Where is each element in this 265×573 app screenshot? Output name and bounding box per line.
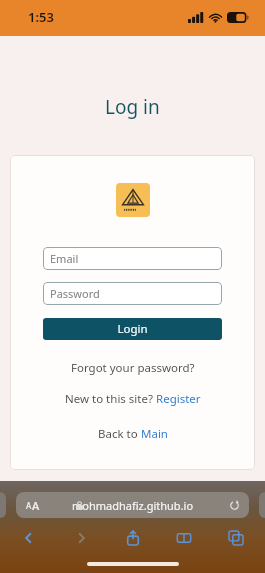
staticText: mohmadhafiz.github.io [72,498,194,513]
staticText: Main [141,426,168,442]
staticText: New to this site? [65,391,156,407]
button[interactable]: Login [43,318,222,340]
other: Abilify logo [116,183,150,217]
button[interactable]: Forward [66,524,96,552]
staticText: Register [156,391,201,407]
button[interactable]: Previous tab [0,492,6,518]
staticText: Login [117,321,148,337]
button[interactable]: Register [156,389,201,409]
button[interactable]: Next tab [259,492,265,518]
staticText: Email [50,251,79,266]
button[interactable]: Back [14,524,44,552]
button[interactable]: Email [43,247,222,270]
staticText: Password [50,286,100,301]
button[interactable]: Password [43,282,222,305]
staticText: Back to [98,426,141,442]
button[interactable]: Forgot your password? [67,358,199,378]
staticText: A [32,498,40,513]
staticText: A [26,500,32,511]
button[interactable]: Main [141,424,168,444]
staticText: Log in [105,94,160,120]
staticText: 1:53 [28,8,54,26]
button[interactable]: mohmadhafiz.github.io [16,492,249,518]
button[interactable]: Share [118,524,148,552]
button[interactable]: Bookmarks [169,524,199,552]
staticText: Forgot your password? [71,360,195,376]
button[interactable]: Tabs [221,524,251,552]
